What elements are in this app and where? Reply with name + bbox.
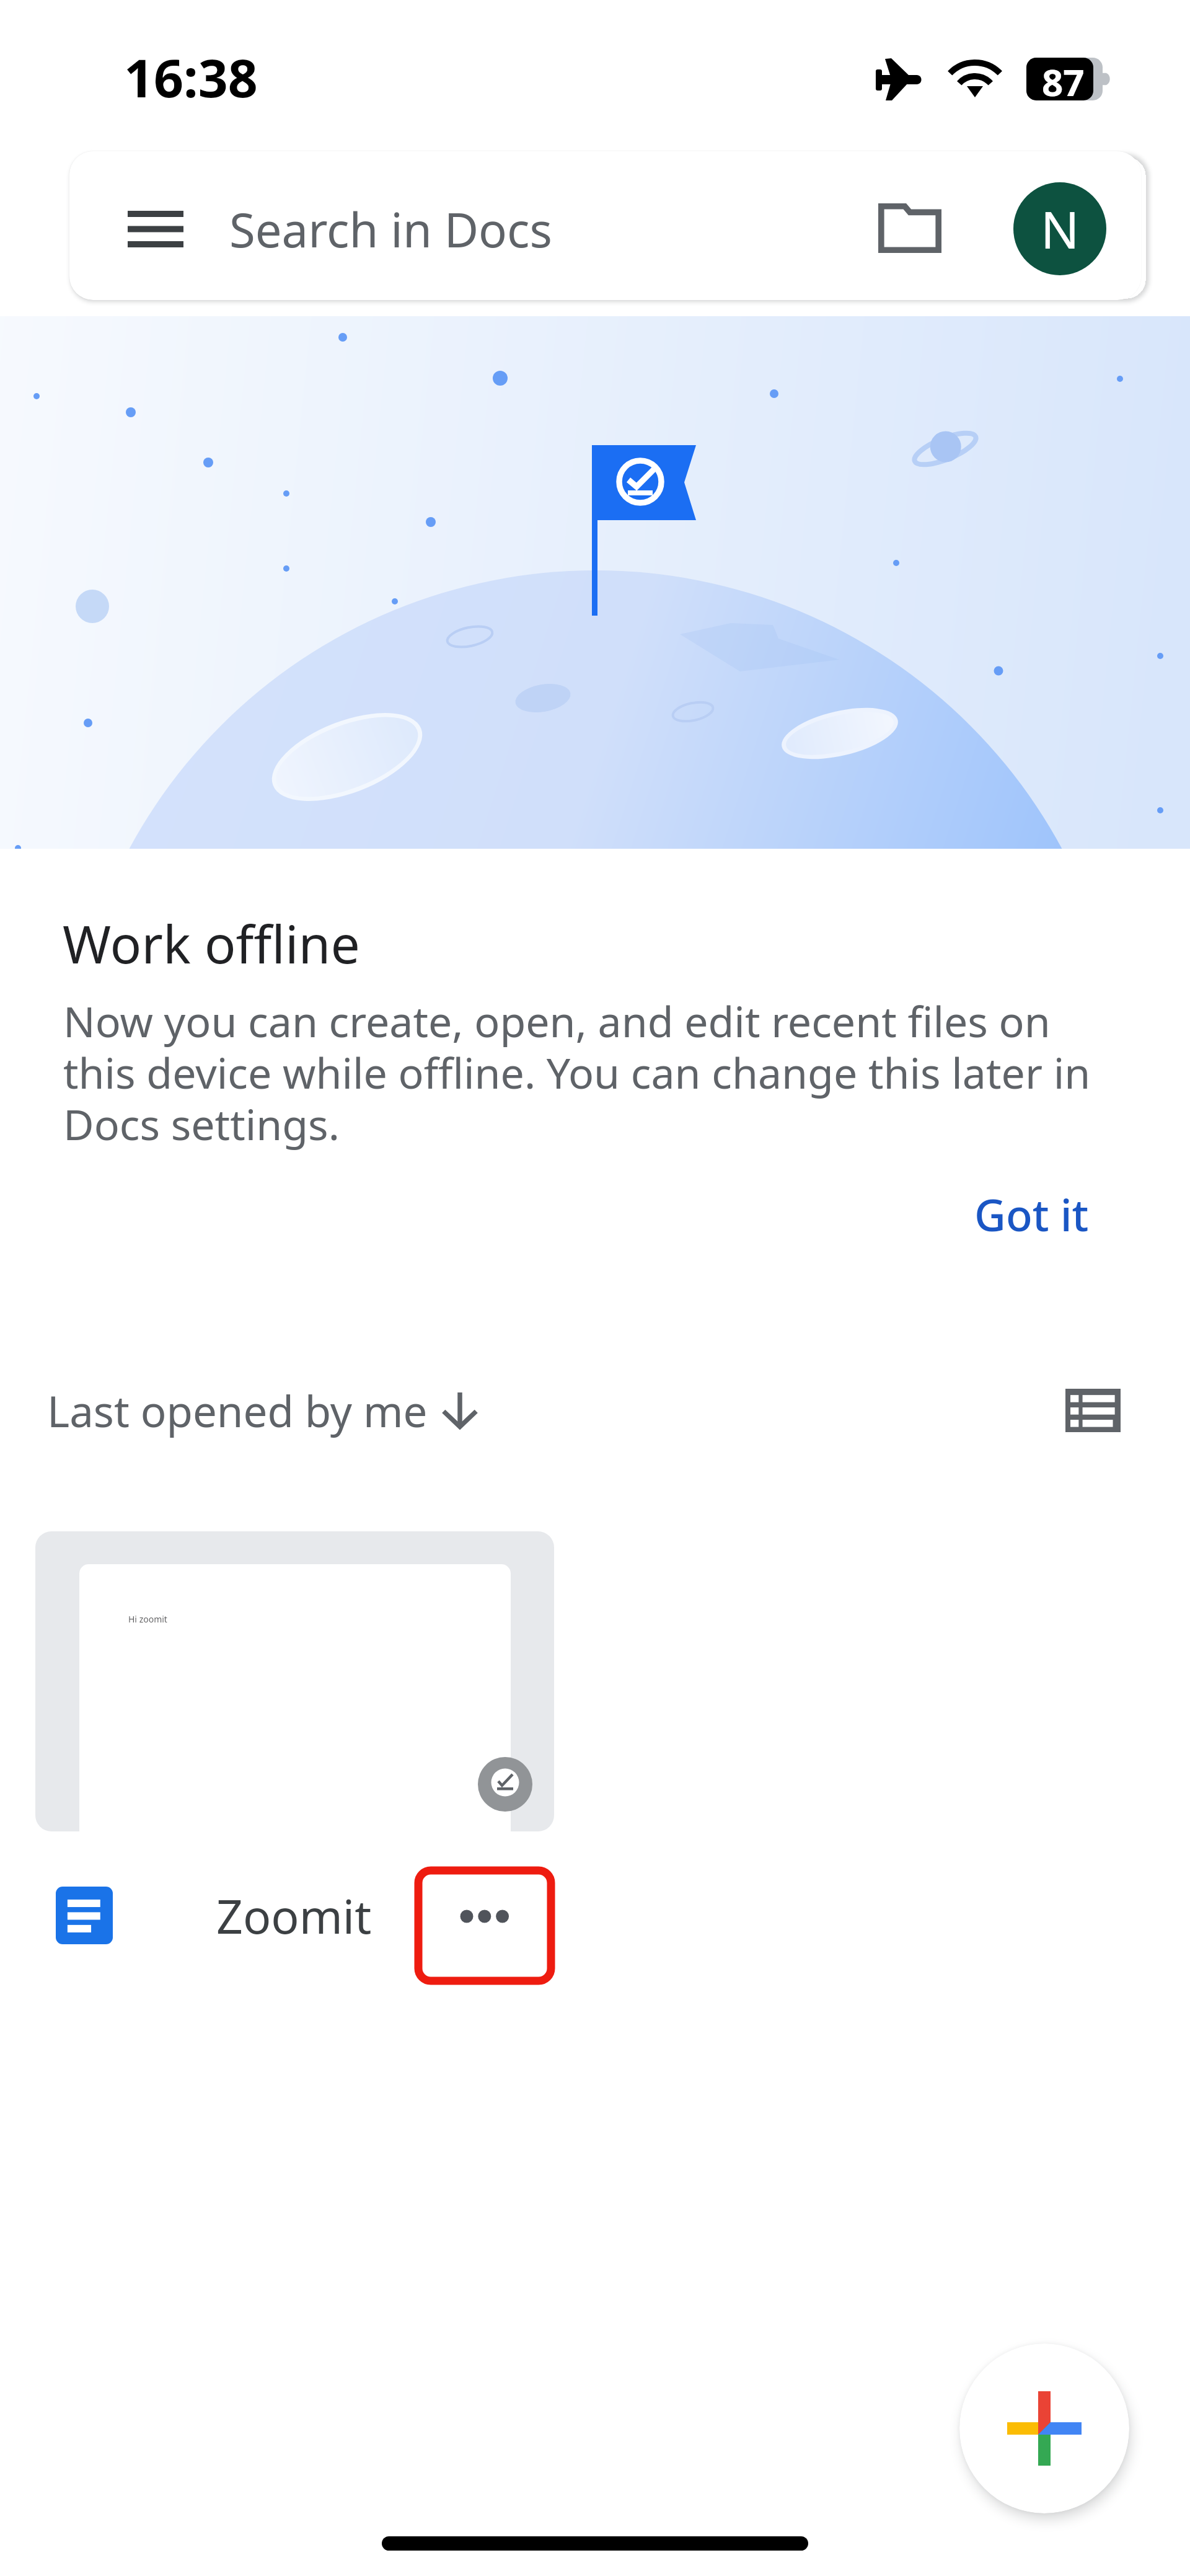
staticText: Last opened by me	[47, 1381, 428, 1440]
other: Folders	[878, 203, 941, 253]
button[interactable]: Zoomit	[35, 1867, 554, 1985]
button[interactable]: Got it	[951, 1174, 1112, 1254]
button[interactable]: Switch to list view	[1054, 1371, 1132, 1450]
other: Battery 87 percent	[1026, 58, 1109, 100]
staticText: Work offline	[63, 908, 360, 978]
staticText: Hi zoomit	[128, 1613, 167, 1625]
other: Open navigation drawer	[128, 211, 183, 247]
staticText: Got it	[974, 1185, 1089, 1244]
button[interactable]: Hi zoomit	[35, 1531, 554, 1831]
staticText: 16:38	[124, 42, 258, 112]
button[interactable]: Open navigation drawer	[69, 151, 1141, 300]
button[interactable]: Account	[1013, 182, 1106, 275]
staticText: Now you can create, open, and edit recen…	[63, 992, 1117, 1153]
other: Wi-Fi	[949, 58, 1000, 100]
staticText: 87	[1042, 56, 1085, 107]
other: Airplane mode on	[876, 58, 923, 100]
staticText: N	[1041, 194, 1080, 263]
staticText: Zoomit	[216, 1884, 372, 1947]
staticText: Search in Docs	[229, 197, 552, 262]
button[interactable]: Last opened by me	[35, 1366, 493, 1455]
button[interactable]: Create new document	[959, 2344, 1129, 2513]
button[interactable]: More options for Zoomit	[415, 1867, 555, 1985]
